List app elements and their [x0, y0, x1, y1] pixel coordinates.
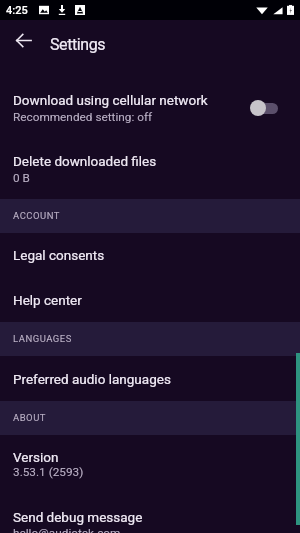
staticText: 4:25	[6, 4, 28, 17]
button[interactable]: Legal consents	[0, 233, 300, 278]
button[interactable]: Preferred audio languages	[0, 356, 300, 401]
staticText: Send debug message	[13, 509, 300, 525]
staticText: Settings	[50, 35, 300, 54]
staticText: Download using cellular network	[13, 92, 300, 108]
staticText: Recommended setting: off	[13, 110, 300, 124]
staticText: hello@audiotek.com	[13, 526, 300, 533]
button[interactable]: Delete downloaded files	[0, 128, 300, 199]
button[interactable]: Send debug message	[0, 495, 300, 533]
staticText: Legal consents	[13, 247, 300, 263]
staticText: Help center	[13, 292, 300, 308]
staticText: LANGUAGES	[13, 333, 300, 344]
button[interactable]: Back	[2, 19, 44, 61]
staticText: ACCOUNT	[13, 210, 300, 221]
staticText: Version	[13, 449, 300, 465]
staticText: 3.53.1 (2593)	[13, 465, 300, 479]
staticText: Preferred audio languages	[13, 371, 300, 387]
button[interactable]: Download using cellular network toggle	[246, 96, 288, 120]
button[interactable]: Help center	[0, 278, 300, 322]
button[interactable]: Download using cellular network	[0, 65, 300, 128]
staticText: 0 B	[13, 171, 300, 185]
staticText: Delete downloaded files	[13, 153, 300, 169]
button[interactable]: Version	[0, 435, 300, 483]
staticText: ABOUT	[13, 412, 300, 423]
